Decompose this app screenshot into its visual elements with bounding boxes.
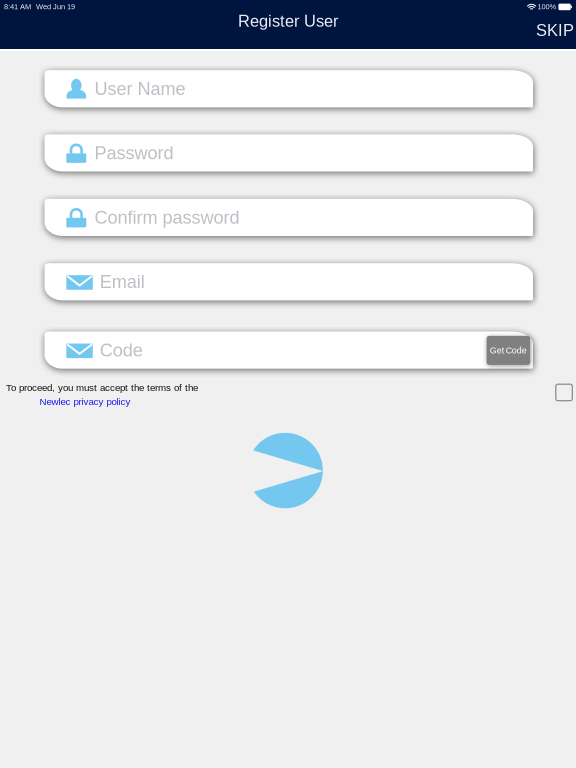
staticText: User Name (94, 79, 185, 99)
staticText: Password (94, 143, 173, 163)
staticText: Email (100, 272, 145, 292)
button[interactable]: Code (44, 331, 533, 369)
button[interactable]: Confirm password (44, 199, 533, 236)
button[interactable]: Get Code (487, 336, 530, 365)
button[interactable]: Password (44, 134, 533, 171)
button[interactable]: Newlec privacy policy (40, 396, 131, 407)
button[interactable]: Email (44, 263, 533, 300)
staticText: To proceed, you must accept the terms of… (6, 382, 198, 393)
button[interactable]: SKIP (526, 16, 576, 44)
staticText: Newlec privacy policy (40, 396, 131, 407)
staticText: 8:41 AM (4, 2, 31, 11)
staticText: SKIP (536, 21, 574, 39)
button[interactable]: User Name (44, 70, 533, 107)
staticText: Confirm password (94, 207, 239, 228)
staticText: 100% (537, 2, 556, 11)
staticText: Code (100, 340, 143, 360)
staticText: Wed Jun 19 (36, 2, 75, 11)
button[interactable]: Accept terms (556, 384, 572, 401)
staticText: Register User (238, 12, 338, 30)
staticText: Get Code (490, 345, 527, 355)
